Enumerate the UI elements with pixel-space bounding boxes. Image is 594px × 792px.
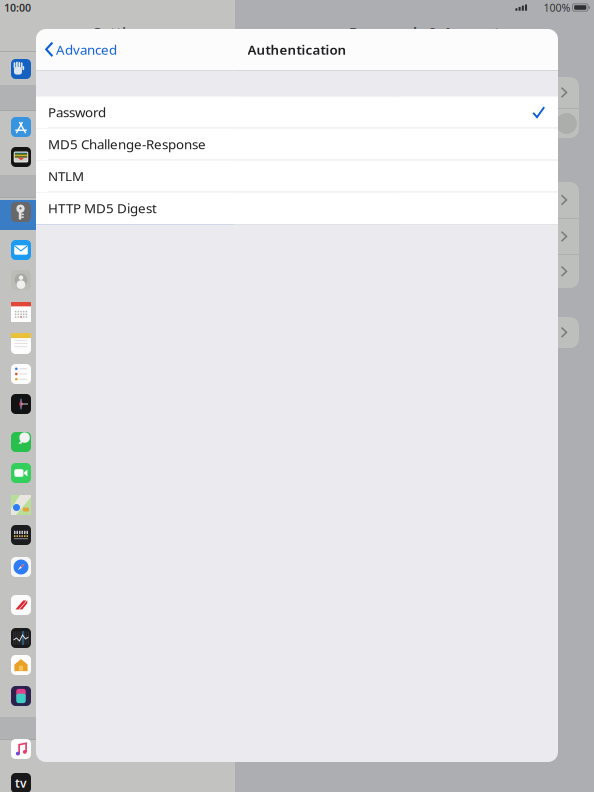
staticText: HTTP MD5 Digest [48,199,157,217]
staticText: Settings [93,22,151,42]
button[interactable]: MD5 Challenge-Response [36,128,558,160]
staticText: Passwords & Accounts [349,22,507,42]
staticText: tv [15,775,27,791]
button[interactable]: Password [36,96,558,128]
staticText: NTLM [48,167,84,185]
staticText: 100% [543,0,570,15]
staticText: Password [48,103,106,121]
staticText: Authentication [247,41,346,58]
button[interactable]: NTLM [36,160,558,192]
staticText: MD5 Challenge-Response [48,135,206,153]
button[interactable]: Advanced [36,29,125,70]
staticText: 10:00 [4,0,31,15]
staticText: Advanced [56,41,117,58]
button[interactable]: HTTP MD5 Digest [36,192,558,224]
